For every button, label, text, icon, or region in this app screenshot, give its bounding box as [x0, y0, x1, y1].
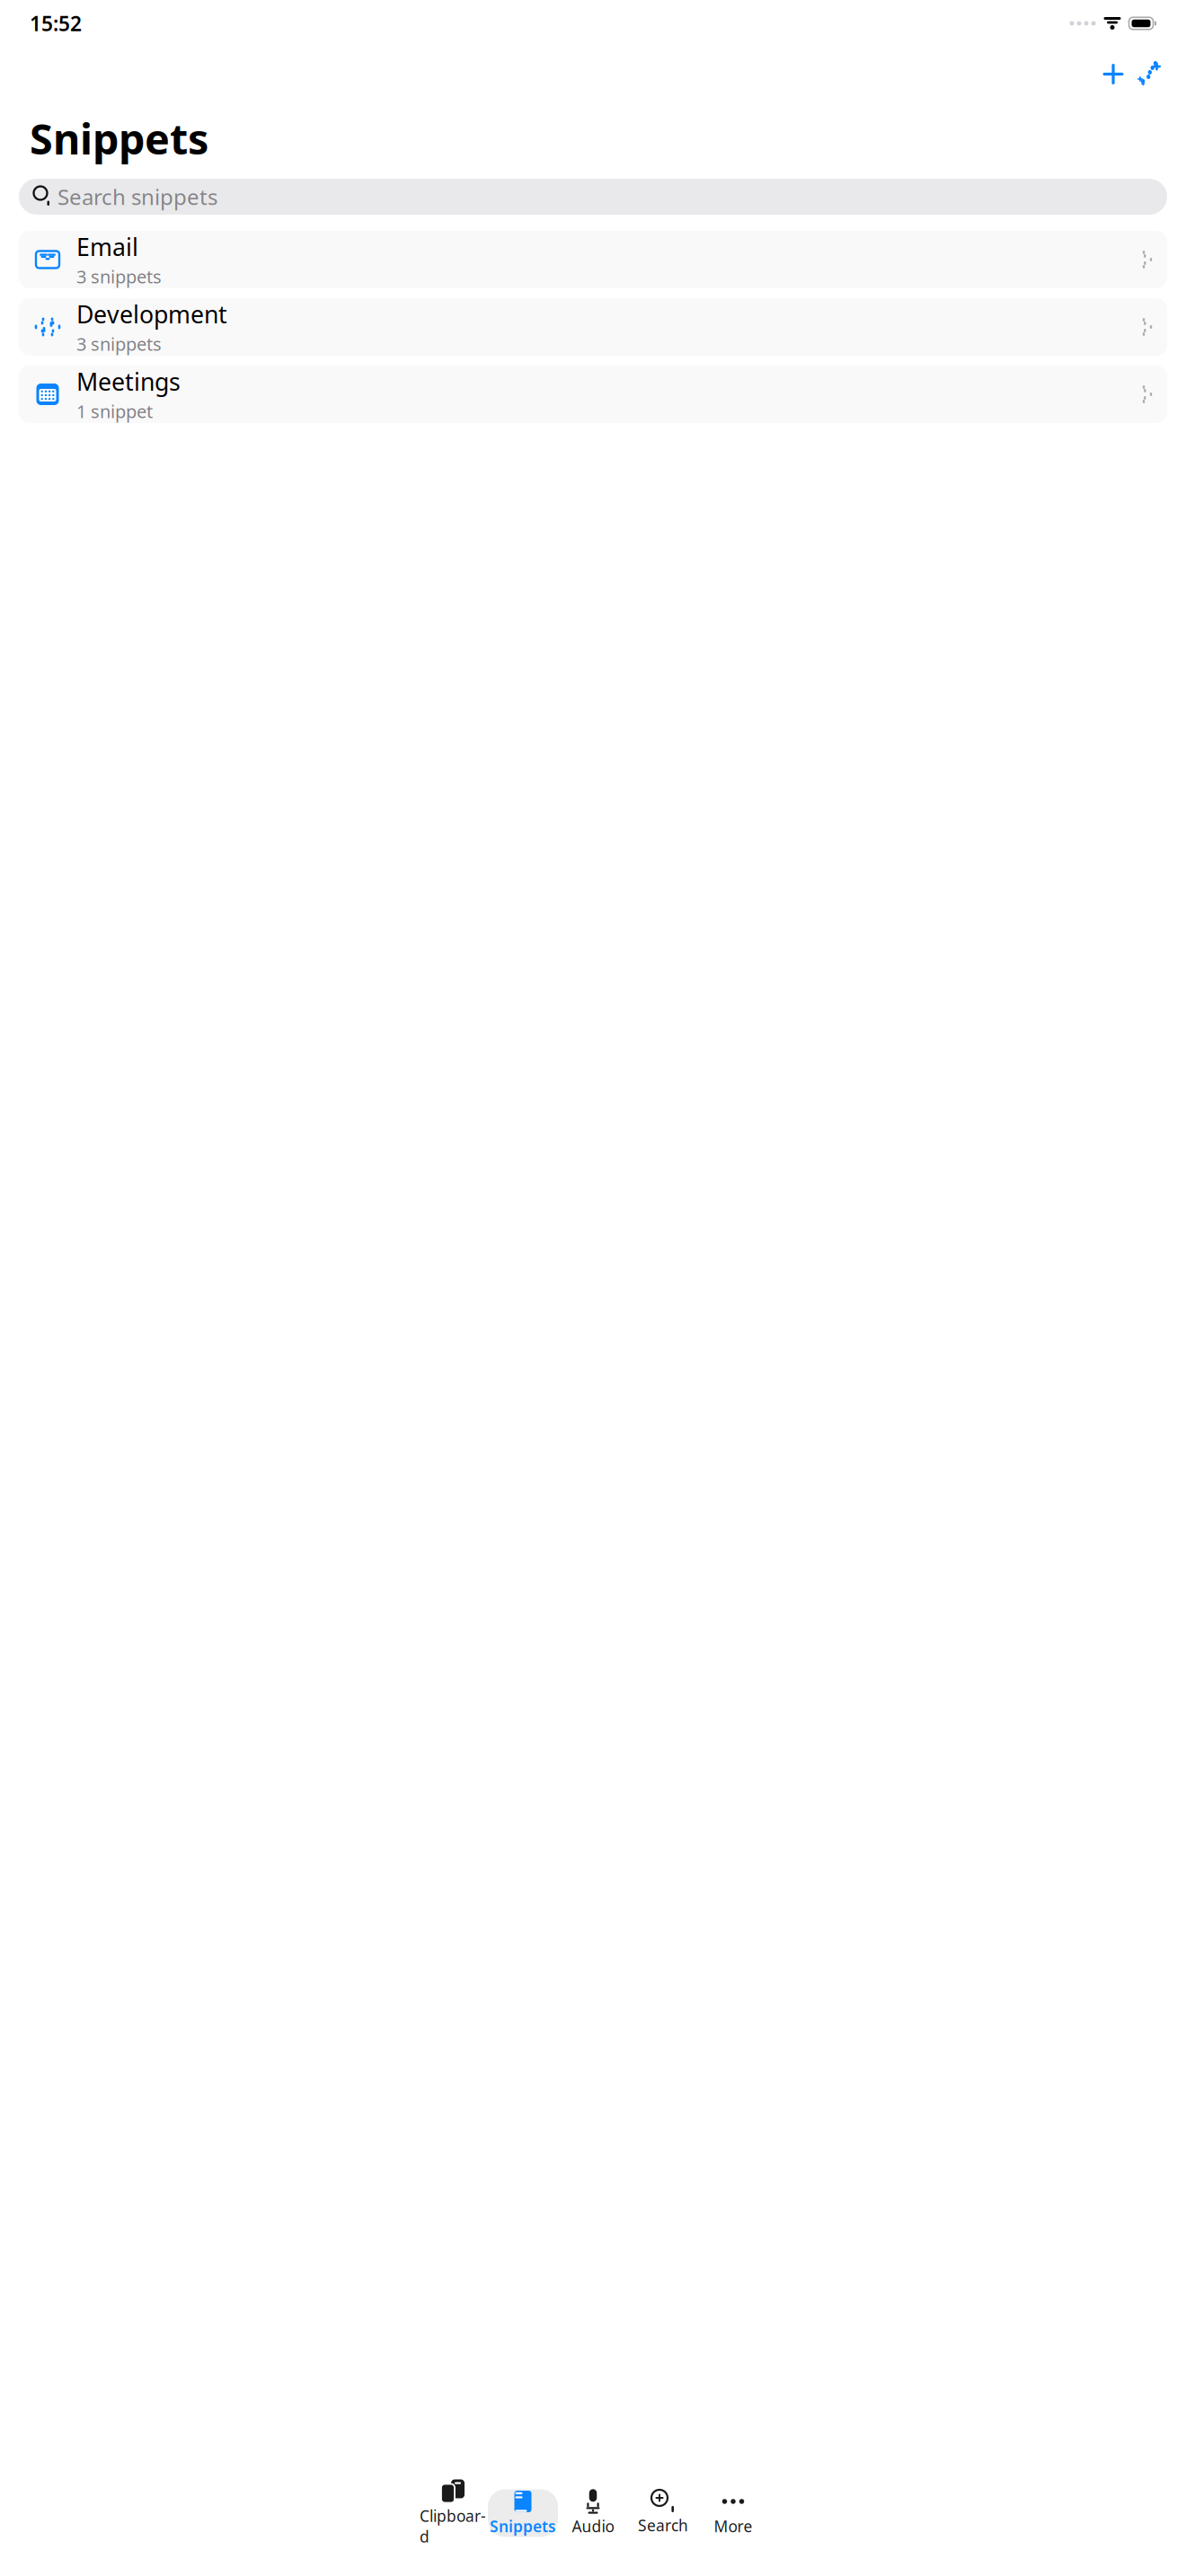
button[interactable]: Email — [19, 231, 1167, 288]
button[interactable]: Audio — [558, 2489, 628, 2537]
staticText: Audio — [572, 2516, 614, 2536]
button[interactable]: Search snippets — [19, 179, 1167, 215]
staticText: 15:52 — [30, 10, 82, 37]
staticText: Clipboard — [420, 2505, 486, 2547]
staticText: Development — [76, 298, 227, 330]
staticText: Search snippets — [58, 182, 217, 211]
staticText: More — [714, 2516, 752, 2536]
staticText: Email — [76, 231, 138, 263]
button[interactable]: Clipboard — [418, 2489, 488, 2537]
staticText: Snippets — [490, 2516, 556, 2536]
button[interactable]: Development — [19, 298, 1167, 356]
staticText: Snippets — [30, 110, 208, 166]
button[interactable]: Snippets — [488, 2489, 558, 2537]
staticText: 3 snippets — [76, 332, 162, 356]
staticText: Meetings — [76, 366, 181, 397]
button[interactable]: Search — [628, 2489, 698, 2537]
button[interactable]: Magic suggestions — [1131, 56, 1167, 93]
staticText: 3 snippets — [76, 264, 162, 288]
staticText: Search — [638, 2515, 688, 2536]
button[interactable]: New snippet — [1095, 56, 1131, 93]
button[interactable]: More — [698, 2489, 768, 2537]
staticText: 1 snippet — [76, 399, 153, 423]
button[interactable]: Meetings — [19, 366, 1167, 423]
